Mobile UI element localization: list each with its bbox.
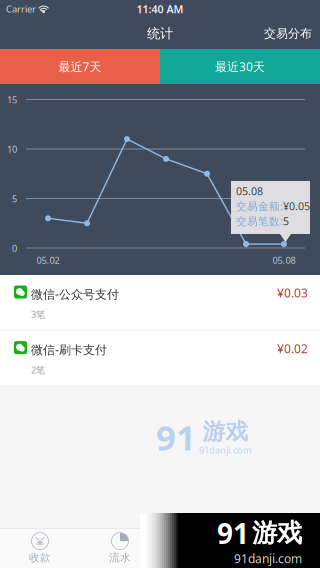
staticText: 10 — [7, 143, 17, 155]
button[interactable]: 流水 — [80, 529, 160, 568]
button[interactable]: 微信-公众号支付 — [0, 275, 320, 330]
button[interactable]: 收款 — [0, 529, 80, 568]
button[interactable]: 我的 — [240, 529, 320, 568]
staticText: 91 — [217, 514, 249, 552]
staticText: 微信-公众号支付 — [31, 286, 119, 302]
button[interactable]: 最近7天 — [0, 49, 160, 84]
staticText: ¥0.05 — [283, 199, 310, 213]
staticText: 91danji.com — [234, 551, 302, 566]
staticText: 交易金额: — [236, 199, 283, 213]
staticText: 流水 — [109, 551, 131, 564]
staticText: ¥0.03 — [277, 285, 308, 301]
staticText: 0 — [12, 242, 17, 254]
staticText: 交易分布 — [264, 26, 312, 41]
staticText: 交易笔数: — [236, 214, 283, 228]
staticText: 11:40 AM — [136, 2, 183, 16]
staticText: 15 — [7, 93, 17, 106]
staticText: 最近7天 — [58, 58, 101, 74]
staticText: 我的 — [269, 551, 291, 564]
staticText: 5 — [283, 214, 289, 228]
staticText: Carrier — [6, 3, 36, 15]
staticText: 2笔 — [31, 364, 45, 376]
staticText: 91danji.com — [199, 444, 252, 456]
staticText: 统计 — [147, 25, 173, 42]
staticText: ¥0.02 — [277, 341, 308, 356]
staticText: 91 — [156, 414, 196, 460]
staticText: 最近30天 — [215, 58, 265, 74]
staticText: 05.02 — [36, 254, 59, 266]
button[interactable]: 微信-刷卡支付 — [0, 331, 320, 386]
button[interactable]: 统计 — [160, 529, 240, 568]
staticText: 05.08 — [236, 184, 263, 198]
staticText: 微信-刷卡支付 — [31, 342, 107, 357]
staticText: 5 — [12, 192, 17, 205]
staticText: 05.08 — [272, 254, 295, 266]
staticText: 游戏 — [202, 418, 248, 446]
button[interactable]: 最近30天 — [160, 49, 320, 84]
staticText: 收款 — [29, 551, 51, 564]
staticText: 游戏 — [252, 517, 302, 549]
button[interactable]: 交易分布 — [256, 18, 320, 49]
staticText: 3笔 — [31, 308, 45, 320]
